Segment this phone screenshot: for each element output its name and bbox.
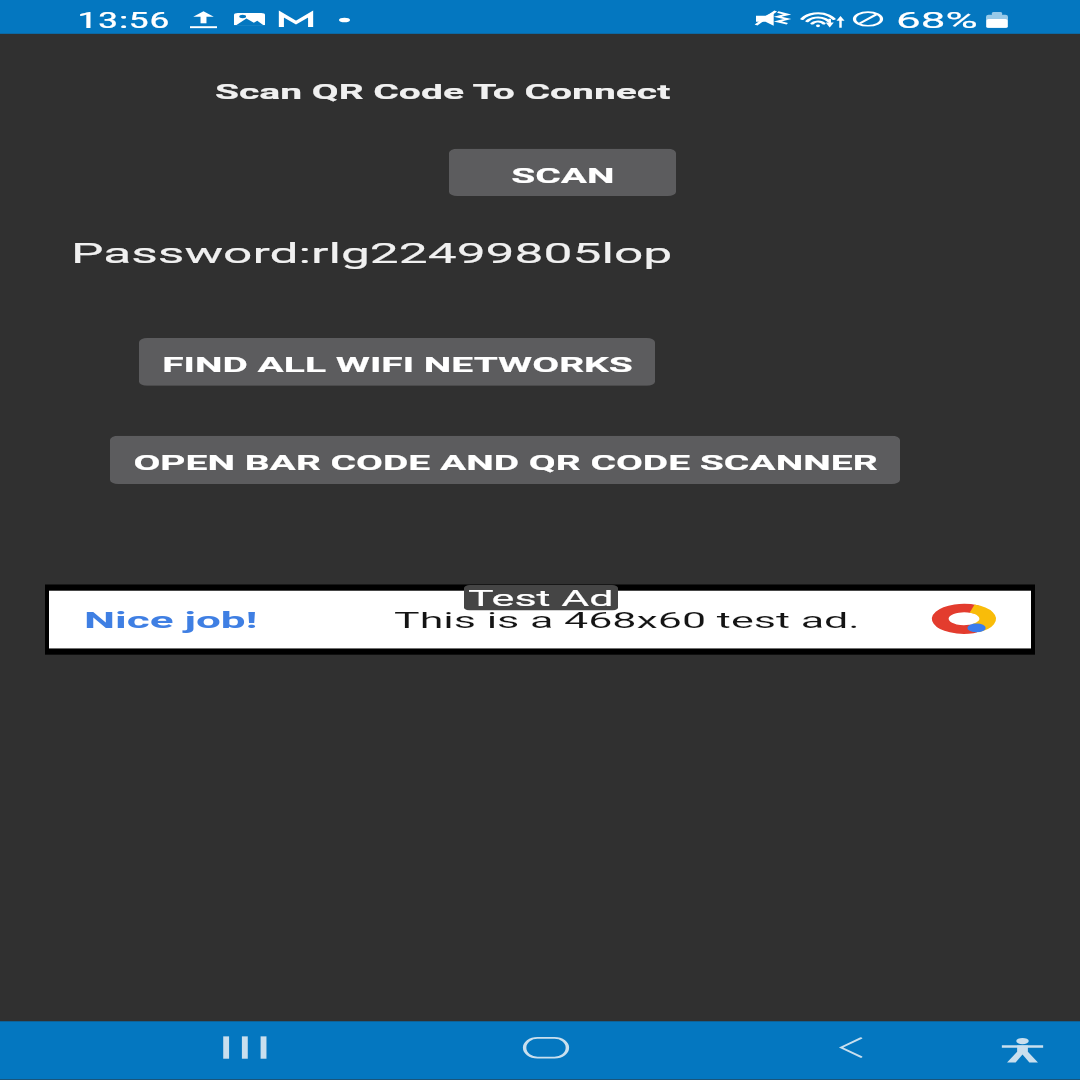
button[interactable]: Recent apps [184, 1021, 304, 1079]
button[interactable]: FIND ALL WIFI NETWORKS [139, 338, 655, 386]
button[interactable]: SCAN [449, 149, 676, 196]
staticText: Nice job! [84, 606, 258, 633]
staticText: FIND ALL WIFI NETWORKS [162, 353, 633, 377]
staticText: This is a 468x60 test ad. [394, 607, 860, 633]
button[interactable]: Nice job! [45, 584, 1035, 655]
button[interactable]: Back [798, 1021, 902, 1079]
staticText: Scan QR Code To Connect [215, 81, 671, 104]
staticText: 68% [896, 6, 978, 33]
staticText: 13:56 [77, 8, 170, 33]
button[interactable]: OPEN BAR CODE AND QR CODE SCANNER [110, 436, 900, 484]
button[interactable]: Accessibility [962, 1021, 1080, 1079]
staticText: OPEN BAR CODE AND QR CODE SCANNER [133, 451, 878, 475]
button[interactable]: Home [484, 1021, 608, 1079]
staticText: SCAN [511, 164, 615, 188]
staticText: Test Ad [468, 585, 614, 610]
staticText: Password:rlg22499805lop [71, 238, 673, 269]
